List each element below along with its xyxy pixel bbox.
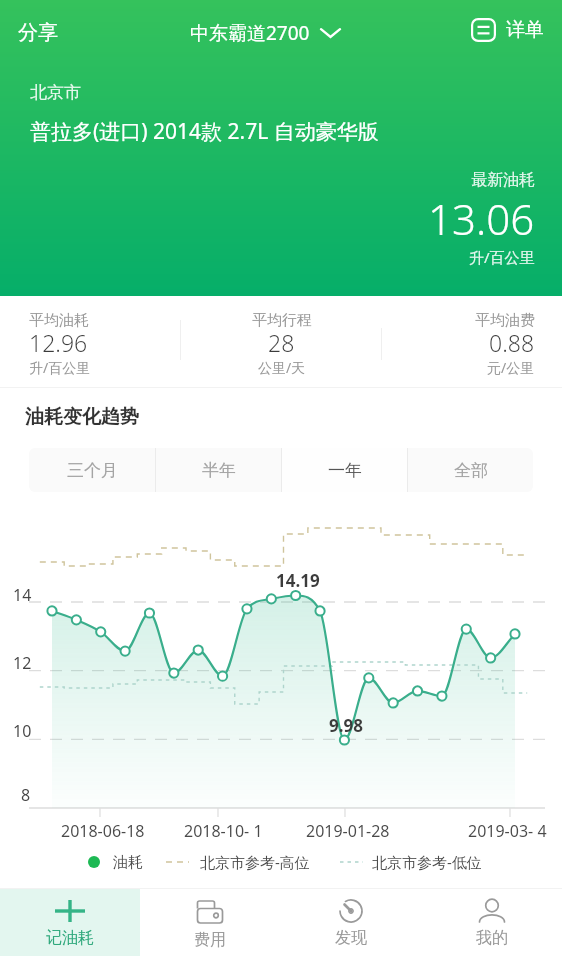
staticText: 我的 (476, 928, 508, 948)
staticText: 最新油耗 (471, 170, 535, 190)
staticText: 一年 (328, 460, 362, 481)
staticText: 费用 (194, 930, 226, 950)
staticText: 平均行程 (252, 311, 312, 330)
staticText: 平均油费 (475, 311, 535, 330)
staticText: 0.88 (489, 327, 535, 358)
staticText: 中东霸道2700 (190, 20, 310, 46)
button[interactable]: 中东霸道2700 (190, 14, 340, 52)
staticText: 北京市参考-高位 (200, 852, 310, 872)
button[interactable]: 全部 (408, 448, 533, 492)
staticText: 发现 (335, 928, 367, 948)
staticText: 分享 (18, 20, 58, 45)
button[interactable]: 记油耗 (0, 889, 140, 956)
staticText: 2019-01-28 (306, 820, 390, 842)
staticText: 北京市参考-低位 (372, 852, 482, 872)
button[interactable]: 半年 (156, 448, 281, 492)
staticText: 8 (21, 784, 31, 806)
staticText: 公里/天 (258, 358, 306, 377)
button[interactable]: 我的 (421, 889, 562, 956)
staticText: 2018-10- 1 (184, 820, 263, 842)
button[interactable]: 三个月 (29, 448, 155, 492)
staticText: 12 (13, 652, 32, 674)
staticText: 升/百公里 (469, 247, 535, 267)
button[interactable]: 分享 (10, 14, 66, 51)
staticText: 普拉多(进口) 2014款 2.7L 自动豪华版 (30, 117, 379, 146)
staticText: 2019-03- 4 (468, 820, 547, 842)
staticText: 28 (268, 327, 295, 358)
staticText: 三个月 (67, 460, 118, 481)
staticText: 12.96 (29, 327, 88, 358)
staticText: 14.19 (276, 569, 320, 592)
staticText: 北京市 (30, 82, 81, 103)
staticText: 油耗 (113, 853, 143, 872)
staticText: 9.98 (329, 714, 363, 737)
staticText: 10 (13, 720, 32, 742)
button[interactable]: 费用 (140, 889, 280, 956)
button[interactable]: 发现 (280, 889, 421, 956)
staticText: 半年 (202, 460, 236, 481)
staticText: 13.06 (428, 190, 535, 247)
staticText: 14 (13, 584, 32, 606)
staticText: 全部 (454, 460, 488, 481)
staticText: 记油耗 (46, 928, 94, 948)
staticText: 升/百公里 (29, 358, 91, 377)
staticText: 详单 (506, 18, 544, 42)
button[interactable]: 详单 (463, 14, 552, 46)
staticText: 油耗变化趋势 (25, 405, 139, 429)
staticText: 平均油耗 (29, 311, 89, 330)
staticText: 元/公里 (487, 358, 535, 377)
staticText: 2018-06-18 (61, 820, 145, 842)
button[interactable]: 一年 (282, 448, 407, 492)
